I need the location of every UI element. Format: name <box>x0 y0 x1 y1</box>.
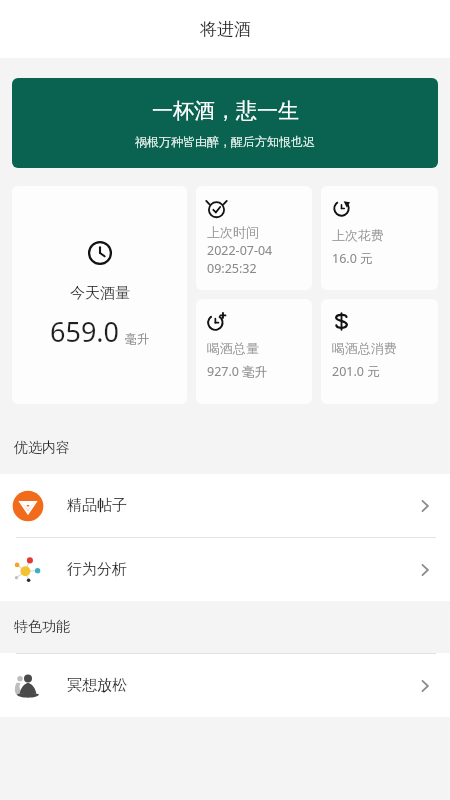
staticText: 今天酒量 <box>70 284 130 303</box>
staticText: 优选内容 <box>14 439 70 457</box>
staticText: 特色功能 <box>14 618 70 636</box>
staticText: 祸根万种皆由醉，醒后方知恨也迟 <box>135 134 315 149</box>
button[interactable]: 精品帖子 <box>0 474 450 537</box>
button[interactable]: 行为分析 <box>0 538 450 601</box>
button[interactable]: 喝酒总消费 <box>321 299 438 404</box>
staticText: 927.0 毫升 <box>207 363 268 380</box>
button[interactable]: 喝酒总量 <box>196 299 312 404</box>
staticText: 喝酒总量 <box>207 340 259 356</box>
button[interactable]: 一杯酒，悲一生 <box>12 78 438 168</box>
staticText: 16.0 元 <box>332 250 373 267</box>
button[interactable]: 冥想放松 <box>0 654 450 717</box>
staticText: 659.0 <box>50 313 120 350</box>
button[interactable]: 上次花费 <box>321 186 438 290</box>
staticText: 201.0 元 <box>332 363 380 380</box>
staticText: 喝酒总消费 <box>332 340 397 356</box>
staticText: 09:25:32 <box>207 260 257 277</box>
staticText: 2022-07-04 <box>207 242 273 259</box>
staticText: 行为分析 <box>67 560 127 579</box>
staticText: 将进酒 <box>200 19 251 40</box>
button[interactable]: 上次时间 <box>196 186 312 290</box>
staticText: 一杯酒，悲一生 <box>152 98 299 124</box>
button[interactable]: 今天酒量 <box>12 186 187 404</box>
staticText: 上次花费 <box>332 227 384 243</box>
staticText: 毫升 <box>125 331 149 346</box>
staticText: 上次时间 <box>207 224 259 240</box>
staticText: 精品帖子 <box>67 496 127 515</box>
staticText: 冥想放松 <box>67 676 127 695</box>
